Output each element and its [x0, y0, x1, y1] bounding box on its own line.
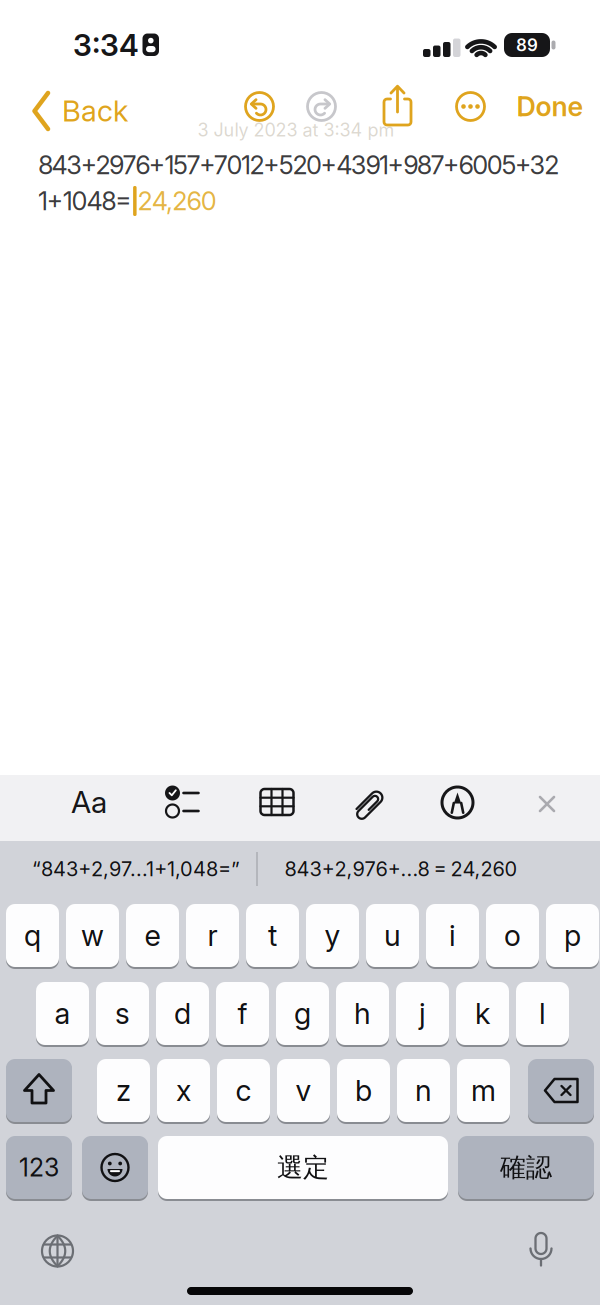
button[interactable]: Dismiss [522, 779, 572, 829]
staticText: o [504, 918, 521, 953]
button[interactable]: Markup [432, 777, 482, 827]
staticText: k [475, 996, 490, 1031]
button[interactable]: z [97, 1059, 150, 1122]
staticText: Back [62, 93, 128, 129]
staticText: c [235, 1073, 251, 1108]
staticText: j [419, 996, 426, 1031]
button[interactable]: o [486, 904, 539, 967]
staticText: y [324, 918, 340, 953]
staticText: b [355, 1073, 372, 1108]
staticText: Done [516, 90, 583, 123]
staticText: u [384, 918, 401, 953]
button[interactable]: Format [59, 777, 119, 827]
button[interactable]: s [96, 982, 149, 1045]
button[interactable]: Checklist [156, 775, 206, 829]
staticText: h [354, 996, 371, 1031]
button[interactable]: v [277, 1059, 330, 1122]
button[interactable]: Shift [6, 1059, 72, 1122]
staticText: t [268, 918, 277, 953]
button[interactable]: e [126, 904, 179, 967]
button[interactable]: y [306, 904, 359, 967]
button[interactable]: d [156, 982, 209, 1045]
button[interactable]: 選定 [158, 1136, 448, 1199]
button[interactable]: c [217, 1059, 270, 1122]
staticText: f [237, 996, 247, 1031]
staticText: l [539, 996, 546, 1031]
staticText: a [54, 996, 70, 1031]
button[interactable]: a [36, 982, 89, 1045]
staticText: e [144, 918, 160, 953]
button[interactable]: t [246, 904, 299, 967]
button[interactable]: n [397, 1059, 450, 1122]
button[interactable]: r [186, 904, 239, 967]
staticText: 843+2,976+...8 = 24,260 [284, 857, 517, 881]
staticText: n [415, 1073, 432, 1108]
staticText: 89 [516, 35, 538, 55]
staticText: 123 [19, 1152, 59, 1183]
staticText: x [176, 1073, 191, 1108]
button[interactable]: f [216, 982, 269, 1045]
button[interactable]: Delete [528, 1059, 594, 1122]
button[interactable]: 確認 [458, 1136, 594, 1199]
staticText: q [24, 918, 41, 953]
staticText: v [295, 1073, 311, 1108]
staticText: 843+2976+157+7012+520+4391+987+6005+32 [38, 150, 559, 180]
staticText: Aa [71, 784, 107, 820]
button[interactable]: Done [490, 84, 600, 128]
button[interactable]: b [337, 1059, 390, 1122]
staticText: 1+1048= [38, 186, 132, 216]
button[interactable]: w [66, 904, 119, 967]
button[interactable]: i [426, 904, 479, 967]
button[interactable]: Redo [299, 84, 343, 128]
button[interactable]: Back [32, 86, 152, 136]
staticText: 24,260 [138, 186, 217, 216]
staticText: s [115, 996, 130, 1031]
button[interactable]: Numbers [6, 1136, 72, 1199]
staticText: w [81, 918, 104, 953]
button[interactable]: x [157, 1059, 210, 1122]
button[interactable]: u [366, 904, 419, 967]
button[interactable]: Undo [237, 84, 281, 128]
button[interactable]: 843+2,976+...8 = 24,260 [261, 839, 541, 899]
button[interactable]: Emoji [82, 1136, 148, 1199]
button[interactable]: j [396, 982, 449, 1045]
button[interactable]: Dictate [516, 1226, 566, 1276]
button[interactable]: More [448, 84, 492, 128]
staticText: “843+2,97...1+1,048=” [32, 857, 240, 881]
button[interactable]: g [276, 982, 329, 1045]
button[interactable]: m [457, 1059, 510, 1122]
button[interactable]: Table [248, 777, 306, 827]
staticText: m [471, 1073, 496, 1108]
staticText: r [207, 918, 217, 953]
staticText: g [294, 996, 311, 1031]
staticText: 確認 [500, 1151, 552, 1184]
staticText: 3:34 [73, 27, 139, 63]
staticText: 3 July 2023 at 3:34 pm [197, 119, 394, 141]
button[interactable]: q [6, 904, 59, 967]
button[interactable]: Share [374, 85, 421, 129]
staticText: 選定 [277, 1151, 329, 1184]
staticText: i [449, 918, 456, 953]
staticText: z [116, 1073, 131, 1108]
button[interactable]: h [336, 982, 389, 1045]
staticText: p [564, 918, 581, 953]
button[interactable]: l [516, 982, 569, 1045]
button[interactable]: Next keyboard [32, 1226, 82, 1276]
button[interactable]: p [546, 904, 599, 967]
staticText: d [174, 996, 191, 1031]
button[interactable]: “843+2,97...1+1,048=” [8, 839, 264, 899]
button[interactable]: Attach [345, 779, 395, 829]
button[interactable]: k [456, 982, 509, 1045]
